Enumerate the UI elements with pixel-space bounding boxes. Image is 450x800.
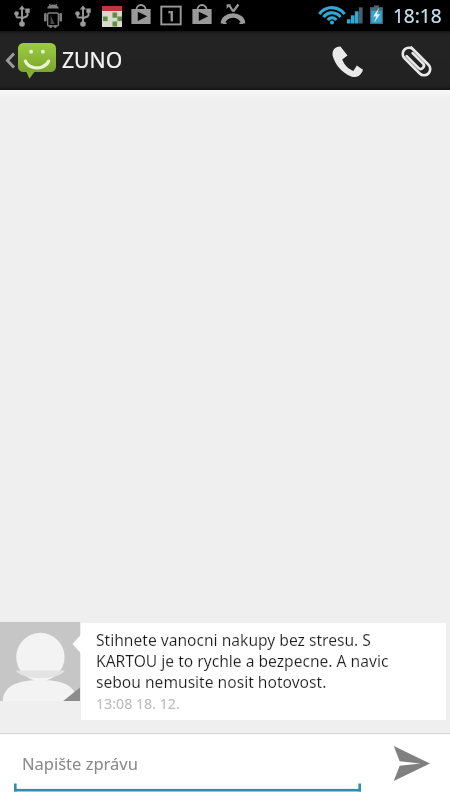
staticText: Stihnete vanocni nakupy bez stresu. S KA… — [96, 629, 389, 692]
staticText: 13:08 18. 12. — [96, 694, 180, 713]
staticText: Napište zprávu — [22, 752, 138, 774]
button[interactable]: Call — [315, 31, 380, 90]
staticText: 18:18 — [393, 3, 442, 29]
button[interactable]: Send — [362, 733, 450, 800]
button[interactable]: Attach — [380, 31, 450, 90]
button[interactable]: Navigate up — [0, 31, 56, 90]
staticText: ZUNO — [62, 45, 123, 74]
button[interactable]: Stihnete vanocni nakupy bez stresu. S KA… — [0, 622, 450, 722]
